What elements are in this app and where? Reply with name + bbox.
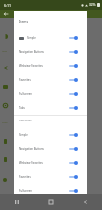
- button[interactable]: Simple: [14, 31, 87, 45]
- staticText: Med: [2, 49, 7, 52]
- staticText: Items: [19, 19, 29, 23]
- button[interactable]: Back: [2, 10, 10, 18]
- button[interactable]: Fullscreen: [14, 87, 87, 101]
- button[interactable]: Navigation Buttons: [14, 142, 87, 156]
- button[interactable]: Navigation Buttons: [14, 45, 87, 59]
- button[interactable]: Back: [78, 195, 92, 209]
- staticText: Navigation Buttons: [19, 147, 44, 151]
- button[interactable]: Home: [44, 195, 58, 209]
- button[interactable]: Simple: [14, 128, 87, 142]
- staticText: Othe: [2, 120, 8, 123]
- staticText: Favorites: [19, 78, 31, 82]
- staticText: 6:11: [4, 3, 12, 8]
- button[interactable]: Webview Favorites: [14, 59, 87, 73]
- staticText: Favorites: [19, 175, 31, 179]
- button[interactable]: Favorites: [14, 170, 87, 184]
- staticText: Fullscreen: [19, 92, 33, 96]
- staticText: Simple: [27, 36, 36, 40]
- staticText: Simple: [19, 133, 28, 137]
- button[interactable]: Fullscreen: [14, 184, 87, 198]
- staticText: Fullscreen: [19, 189, 33, 193]
- button[interactable]: Tabs: [14, 101, 87, 115]
- staticText: Webview Favorites: [19, 161, 43, 165]
- button[interactable]: Favorites: [14, 73, 87, 87]
- staticText: Navigation Buttons: [19, 50, 44, 54]
- staticText: Tabs: [19, 106, 25, 110]
- staticText: 32%: [89, 3, 96, 7]
- button[interactable]: Recent apps: [10, 195, 24, 209]
- staticText: Webview Favorites: [19, 64, 43, 68]
- staticText: New screen: [19, 119, 32, 122]
- button[interactable]: Webview Favorites: [14, 156, 87, 170]
